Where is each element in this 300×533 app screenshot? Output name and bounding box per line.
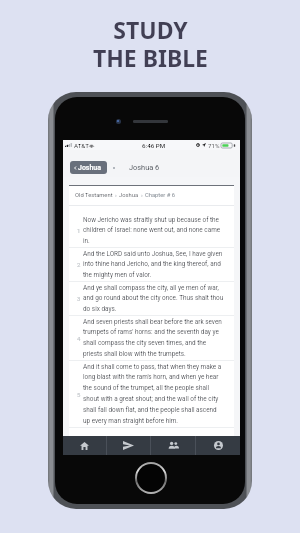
staticText: 6:46 PM: [142, 142, 166, 149]
staticText: 2: [77, 261, 81, 268]
staticText: AT&T: [74, 142, 89, 149]
staticText: And ye shall compass the city, all ye me…: [83, 284, 225, 313]
staticText: Old Testament: [75, 192, 113, 199]
staticText: 3: [77, 295, 81, 302]
staticText: And it shall come to pass, that when the…: [83, 363, 225, 425]
staticText: 1: [77, 227, 81, 234]
staticText: STUDY: [113, 14, 188, 45]
staticText: 71%: [208, 142, 220, 149]
staticText: Joshua: [78, 164, 102, 172]
staticText: ›: [115, 192, 117, 199]
staticText: And seven priests shall bear before the …: [83, 318, 225, 358]
staticText: THE BIBLE: [93, 42, 208, 73]
button[interactable]: Groups: [151, 436, 195, 455]
staticText: Chapter # 6: [145, 192, 176, 199]
button[interactable]: Home: [63, 436, 106, 455]
staticText: Joshua 6: [129, 163, 160, 172]
staticText: 4: [77, 335, 81, 342]
staticText: And the LORD said unto Joshua, See, I ha…: [83, 250, 225, 279]
staticText: Joshua: [119, 192, 139, 199]
button[interactable]: Send: [107, 436, 150, 455]
staticText: 5: [77, 391, 81, 398]
button[interactable]: Joshua: [70, 161, 107, 174]
button[interactable]: Account: [196, 436, 240, 455]
staticText: Now Jericho was straitly shut up because…: [83, 216, 225, 245]
staticText: ›: [141, 192, 143, 199]
